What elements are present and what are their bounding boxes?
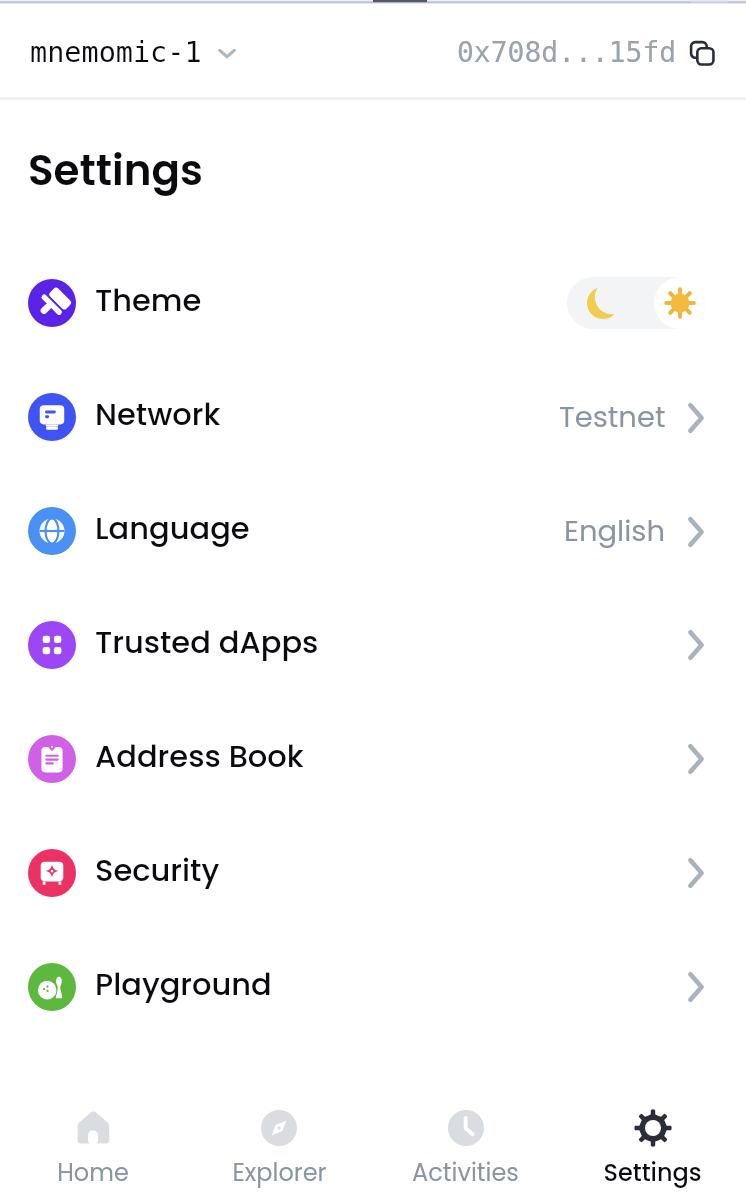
button[interactable]: Home [0,1100,186,1204]
button[interactable]: Address Book [0,702,746,816]
button[interactable]: Security [0,816,746,930]
staticText: Settings [603,1156,702,1190]
staticText: 0x708d...15fd [457,36,677,69]
staticText: Theme [95,279,202,322]
button[interactable]: Network [0,360,746,474]
staticText: Home [57,1156,129,1190]
staticText: Network [95,393,221,436]
button[interactable]: Theme [0,246,746,360]
staticText: English [564,511,666,552]
button[interactable]: Theme toggle [567,277,706,329]
button[interactable]: mnemomic-1 [30,36,240,69]
staticText: Explorer [232,1156,327,1190]
staticText: Security [95,849,220,892]
button[interactable]: Copy address [457,36,715,69]
button[interactable]: Language [0,474,746,588]
staticText: mnemomic-1 [30,36,202,69]
button[interactable]: Explorer [186,1100,372,1204]
staticText: Language [95,507,250,550]
staticText: Activities [412,1156,519,1190]
button[interactable]: Trusted dApps [0,588,746,702]
staticText: Trusted dApps [95,621,319,664]
staticText: Address Book [95,735,304,778]
staticText: Testnet [559,397,666,438]
staticText: Playground [95,963,272,1006]
staticText: Settings [28,141,203,200]
button[interactable]: Settings [559,1100,746,1204]
button[interactable]: Playground [0,930,746,1044]
button[interactable]: Activities [372,1100,559,1204]
